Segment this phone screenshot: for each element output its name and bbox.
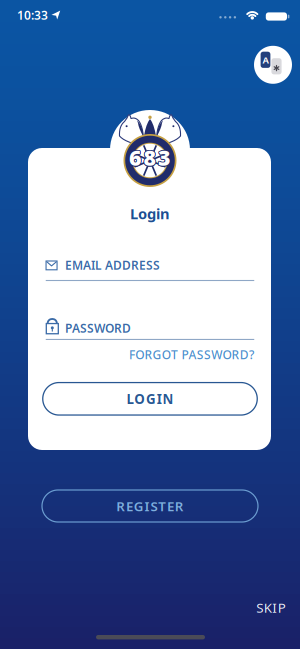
button[interactable]: FORGOT PASSWORD? (94, 346, 254, 362)
button[interactable]: EMAIL ADDRESS (46, 255, 254, 281)
staticText: Login (130, 204, 170, 223)
staticText: 683 (128, 143, 170, 171)
staticText: REGISTER (116, 497, 184, 515)
staticText: EMAIL ADDRESS (65, 257, 160, 273)
staticText: 683 (128, 143, 170, 172)
button[interactable]: REGISTER (42, 490, 258, 522)
staticText: PASSWORD (65, 320, 131, 336)
button[interactable]: A (254, 46, 292, 84)
staticText: 683 (129, 143, 171, 172)
staticText: A (262, 54, 268, 66)
staticText: 10:33 (17, 7, 48, 23)
button[interactable]: SKIP (256, 599, 286, 616)
staticText: 683 (128, 144, 170, 172)
staticText: SKIP (256, 599, 286, 616)
staticText: FORGOT PASSWORD? (129, 346, 254, 362)
staticText: 683 (129, 142, 171, 171)
staticText: LOGIN (126, 390, 174, 408)
staticText: 683 (130, 144, 172, 172)
button[interactable]: LOGIN (43, 383, 257, 415)
button[interactable]: PASSWORD (46, 313, 254, 341)
staticText: 683 (130, 143, 172, 171)
staticText: 683 (129, 144, 171, 172)
staticText: 683 (130, 143, 172, 172)
